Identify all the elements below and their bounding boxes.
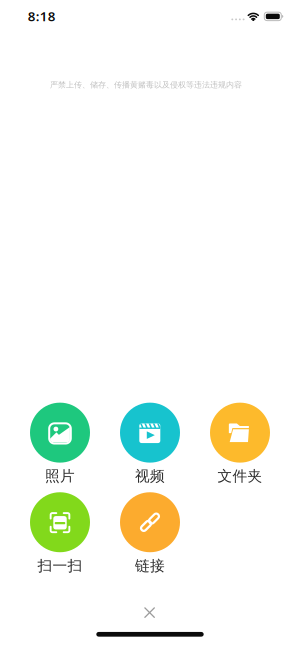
staticText: 严禁上传、储存、传播黄赌毒以及侵权等违法违规内容 bbox=[50, 80, 242, 90]
button[interactable]: 视频 bbox=[120, 403, 180, 485]
staticText: 扫一扫 bbox=[37, 557, 82, 575]
staticText: 照片 bbox=[45, 467, 75, 485]
staticText: 链接 bbox=[135, 557, 165, 575]
button[interactable]: 扫一扫 bbox=[30, 492, 90, 575]
button[interactable]: 文件夹 bbox=[210, 403, 270, 485]
staticText: 8:18 bbox=[28, 7, 56, 25]
staticText: 视频 bbox=[135, 467, 165, 485]
button[interactable]: 照片 bbox=[30, 403, 90, 485]
button[interactable]: 关闭 bbox=[130, 593, 170, 633]
staticText: 文件夹 bbox=[217, 467, 262, 485]
button[interactable]: 链接 bbox=[120, 492, 180, 575]
